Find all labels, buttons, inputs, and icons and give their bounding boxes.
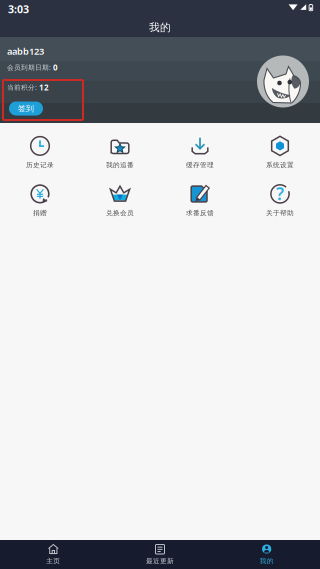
button[interactable]: 兑换会员 (80, 180, 160, 220)
staticText: 3:03 (8, 2, 29, 16)
staticText: 12 (39, 82, 49, 93)
staticText: 兑换会员 (106, 209, 134, 217)
staticText: 签到 (18, 104, 34, 113)
button[interactable]: 求番反馈 (160, 180, 240, 220)
staticText: 我的 (149, 21, 171, 34)
staticText: 我的追番 (106, 161, 134, 169)
staticText: ? (276, 182, 284, 205)
button[interactable]: 最近更新 (107, 540, 213, 569)
staticText: aabb123 (7, 45, 44, 57)
staticText: 当前积分: (7, 83, 37, 92)
button[interactable]: 主页 (0, 540, 107, 569)
staticText: 历史记录 (26, 161, 54, 169)
staticText: 求番反馈 (186, 209, 214, 217)
staticText: 捐赠 (33, 209, 47, 217)
staticText: 系统设置 (266, 161, 294, 169)
button[interactable]: 缓存管理 (160, 132, 240, 172)
staticText: 0 (53, 62, 58, 73)
staticText: 最近更新 (146, 557, 174, 565)
button[interactable]: 历史记录 (0, 132, 80, 172)
button[interactable]: 我的 (213, 540, 320, 569)
button[interactable]: 我的追番 (80, 132, 160, 172)
staticText: 关于帮助 (266, 209, 294, 217)
button[interactable]: 系统设置 (240, 132, 320, 172)
staticText: 主页 (46, 557, 60, 565)
staticText: 我的 (260, 557, 274, 565)
button[interactable]: 签到 (9, 101, 43, 115)
button[interactable]: 捐赠 (0, 180, 80, 220)
button[interactable]: ? (240, 180, 320, 220)
staticText: 会员到期日期: (7, 63, 51, 72)
staticText: 缓存管理 (186, 161, 214, 169)
